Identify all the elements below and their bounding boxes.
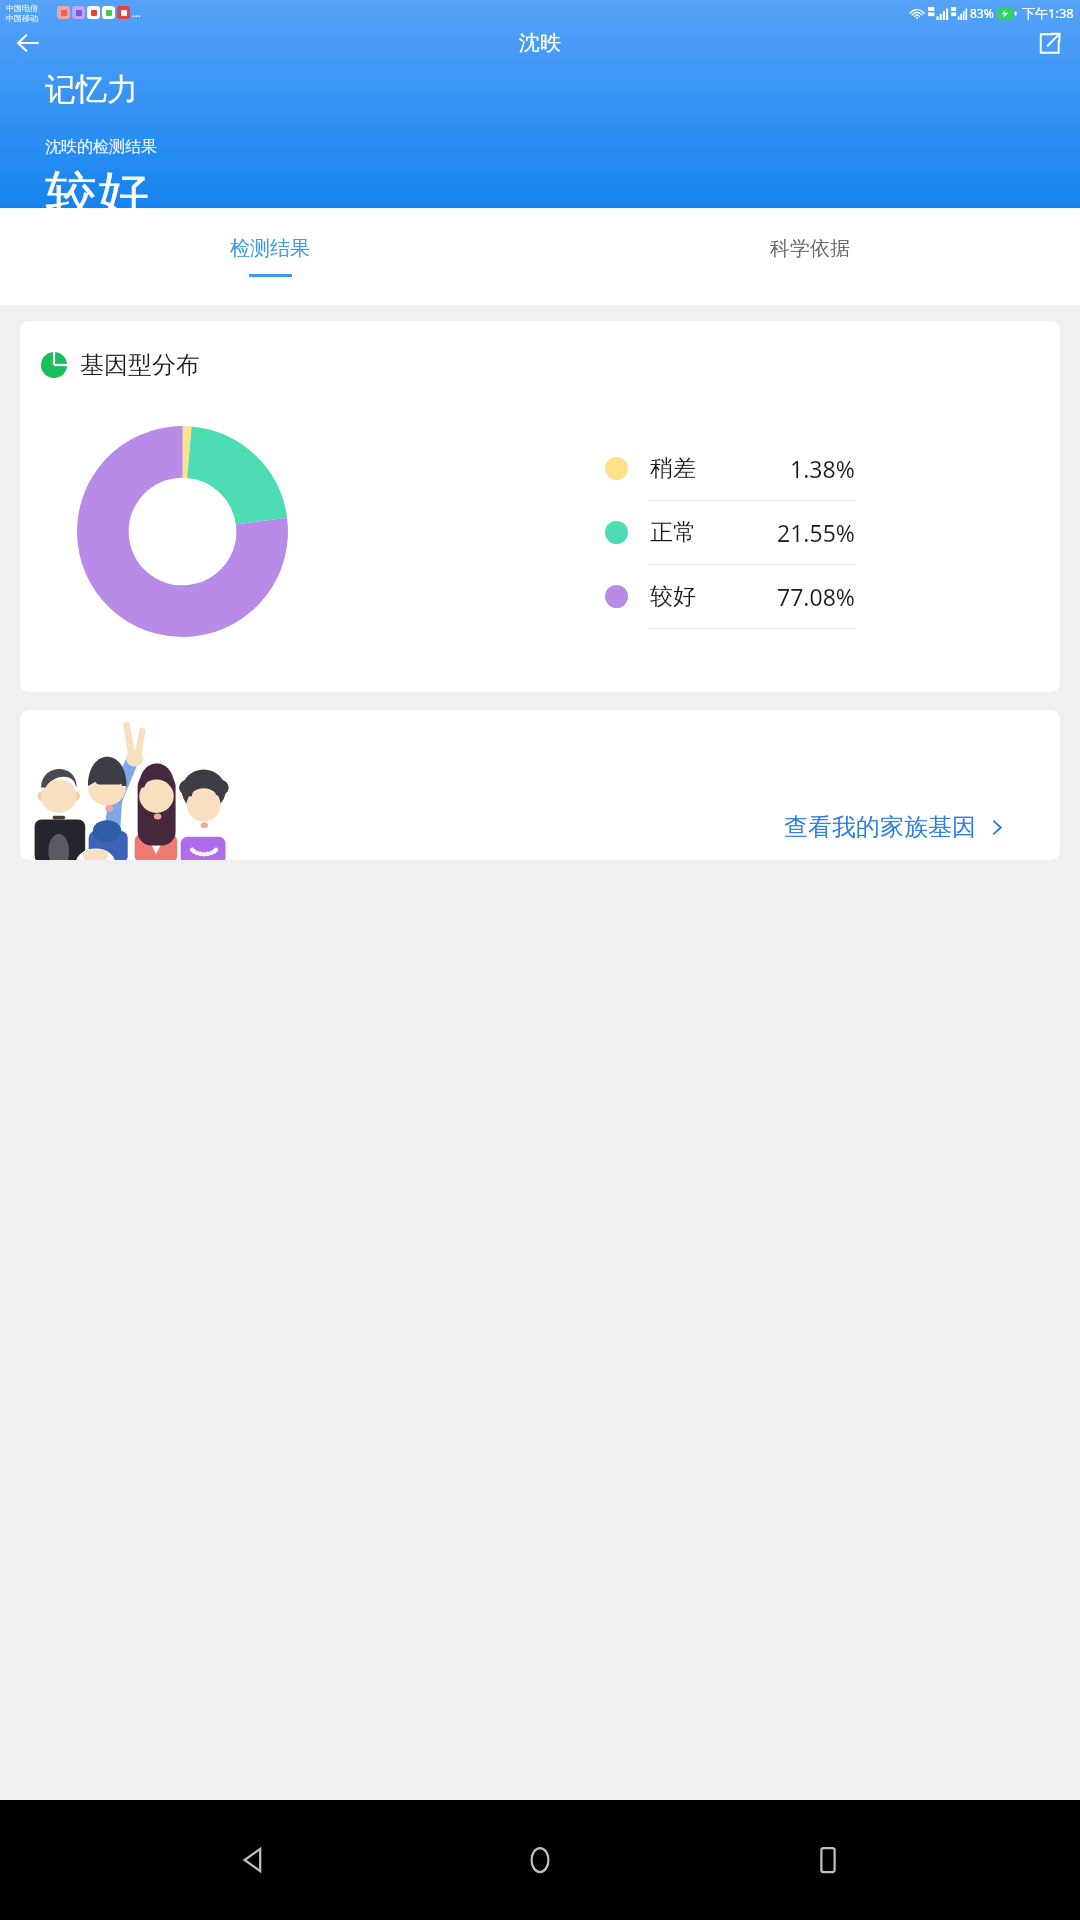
button[interactable]: Recent apps <box>793 1825 863 1895</box>
button[interactable]: 基因型分布 <box>20 321 1060 692</box>
button[interactable]: Share <box>1028 23 1070 63</box>
button[interactable]: 检测结果 <box>0 208 540 305</box>
staticText: 查看我的家族基因 <box>784 812 976 842</box>
staticText: 检测结果 <box>230 236 310 261</box>
staticText: 1.38% <box>790 453 855 484</box>
staticText: 77.08% <box>777 581 855 612</box>
button[interactable]: 科学依据 <box>540 208 1080 305</box>
staticText: 83% <box>970 5 994 21</box>
staticText: 基因型分布 <box>80 350 200 380</box>
staticText: 21.55% <box>777 517 855 548</box>
staticText: 中国电信 <box>6 3 38 13</box>
staticText: 中国移动 <box>6 13 38 23</box>
staticText: 稍差 <box>650 454 696 483</box>
staticText: 沈昳的检测结果 <box>45 137 157 157</box>
button[interactable]: 查看我的家族基因 <box>20 710 1060 860</box>
button[interactable]: Back <box>8 23 48 63</box>
staticText: 较好 <box>650 582 696 611</box>
staticText: 下午1:38 <box>1022 4 1074 22</box>
staticText: … <box>132 5 141 20</box>
button[interactable]: Back <box>218 1825 288 1895</box>
staticText: 较好 <box>45 163 149 208</box>
staticText: 记忆力 <box>45 70 138 109</box>
staticText: 科学依据 <box>770 236 850 261</box>
staticText: 沈昳 <box>519 30 561 56</box>
staticText: 正常 <box>650 518 696 547</box>
button[interactable]: Home <box>505 1825 575 1895</box>
